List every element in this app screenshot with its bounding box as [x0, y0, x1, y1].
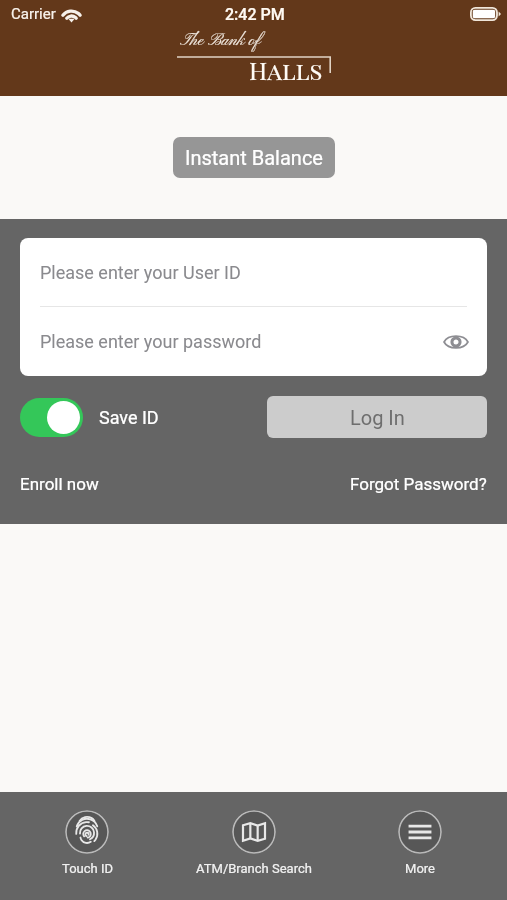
- staticText: Log In: [350, 406, 405, 429]
- staticText: Please enter your User ID: [40, 262, 241, 283]
- button[interactable]: Instant Balance: [173, 137, 335, 178]
- staticText: Halls: [249, 54, 323, 86]
- staticText: Please enter your password: [40, 331, 262, 352]
- button[interactable]: Please enter your password: [20, 307, 487, 376]
- staticText: Save ID: [99, 407, 159, 428]
- staticText: ATM/Branch Search: [196, 861, 312, 876]
- staticText: Carrier: [11, 5, 56, 23]
- staticText: More: [405, 861, 435, 876]
- button[interactable]: Touch ID: [7, 792, 167, 900]
- staticText: Touch ID: [62, 861, 113, 876]
- button[interactable]: Show password: [439, 325, 473, 359]
- button[interactable]: Log In: [267, 396, 487, 438]
- staticText: Forgot Password?: [350, 474, 487, 494]
- staticText: Instant Balance: [185, 146, 323, 169]
- button[interactable]: Forgot Password?: [350, 470, 487, 498]
- button[interactable]: More: [340, 792, 500, 900]
- staticText: 2:42 PM: [225, 5, 285, 24]
- button[interactable]: ATM/Branch Search: [174, 792, 334, 900]
- button[interactable]: Save ID toggle: [20, 398, 83, 437]
- staticText: Enroll now: [20, 474, 99, 494]
- button[interactable]: Enroll now: [20, 470, 99, 498]
- button[interactable]: Please enter your User ID: [20, 238, 487, 306]
- staticText: The Bank of: [180, 30, 261, 51]
